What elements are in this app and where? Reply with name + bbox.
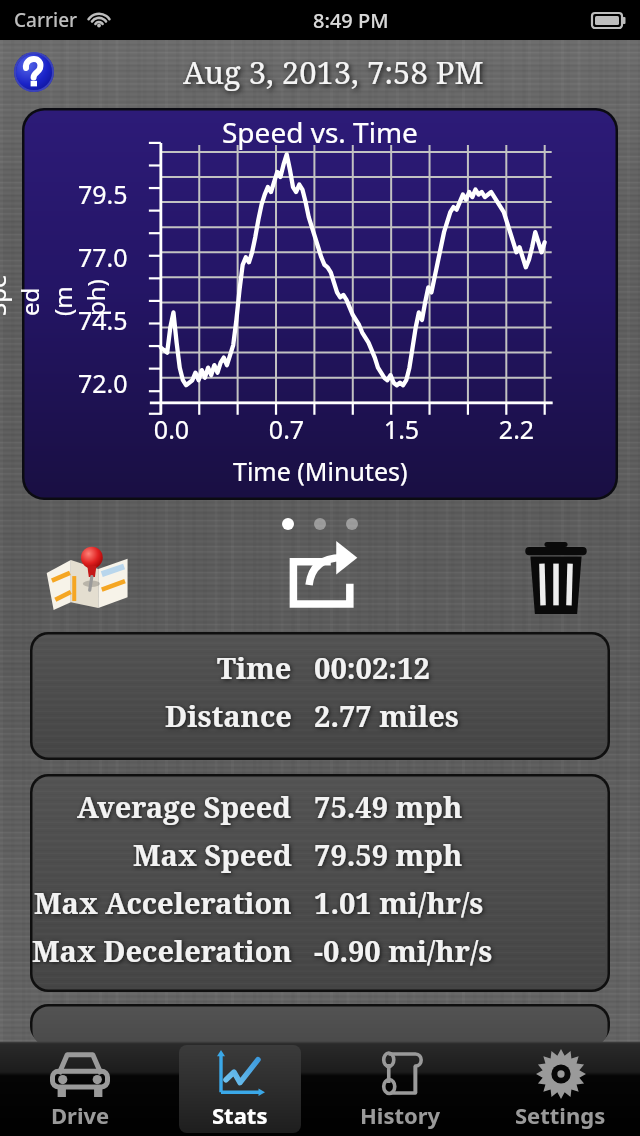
staticText: Distance bbox=[165, 696, 292, 735]
staticText: Average Speed bbox=[77, 787, 292, 826]
staticText: 72.0 bbox=[78, 366, 128, 400]
button[interactable]: Help bbox=[12, 50, 56, 94]
staticText: Speed (mph) bbox=[0, 272, 112, 316]
staticText: Carrier bbox=[14, 7, 78, 33]
staticText: -0.90 mi/hr/s bbox=[314, 931, 493, 970]
staticText: Time bbox=[217, 648, 292, 687]
staticText: Drive bbox=[51, 1100, 110, 1130]
staticText: Max Speed bbox=[133, 835, 292, 874]
staticText: Aug 3, 2013, 7:58 PM bbox=[183, 51, 484, 93]
staticText: Max Deceleration bbox=[32, 931, 292, 970]
staticText: History bbox=[360, 1100, 441, 1130]
staticText: 79.5 bbox=[78, 177, 128, 211]
staticText: Max Acceleration bbox=[34, 883, 292, 922]
button[interactable]: Show map bbox=[42, 543, 134, 613]
staticText: Stats bbox=[212, 1100, 268, 1130]
staticText: 2.2 bbox=[459, 412, 574, 446]
staticText: 1.5 bbox=[344, 412, 459, 446]
staticText: Speed vs. Time bbox=[222, 113, 418, 151]
staticText: 8:49 PM bbox=[313, 7, 389, 34]
staticText: 0.7 bbox=[229, 412, 344, 446]
button[interactable]: History bbox=[339, 1045, 461, 1133]
staticText: 77.0 bbox=[78, 240, 128, 274]
staticText: 79.59 mph bbox=[314, 835, 463, 874]
staticText: 1.01 mi/hr/s bbox=[314, 883, 484, 922]
button[interactable]: Stats bbox=[179, 1045, 301, 1133]
button[interactable]: Settings bbox=[499, 1045, 621, 1133]
staticText: Settings bbox=[515, 1100, 606, 1130]
button[interactable]: Drive bbox=[19, 1045, 141, 1133]
button[interactable]: Share bbox=[282, 543, 366, 613]
staticText: 0.0 bbox=[114, 412, 229, 446]
staticText: 75.49 mph bbox=[314, 787, 463, 826]
staticText: Time (Minutes) bbox=[233, 454, 408, 488]
staticText: 2.77 miles bbox=[314, 696, 459, 735]
staticText: 00:02:12 bbox=[314, 648, 430, 687]
staticText: 74.5 bbox=[78, 303, 128, 337]
button[interactable]: Delete bbox=[514, 541, 598, 615]
